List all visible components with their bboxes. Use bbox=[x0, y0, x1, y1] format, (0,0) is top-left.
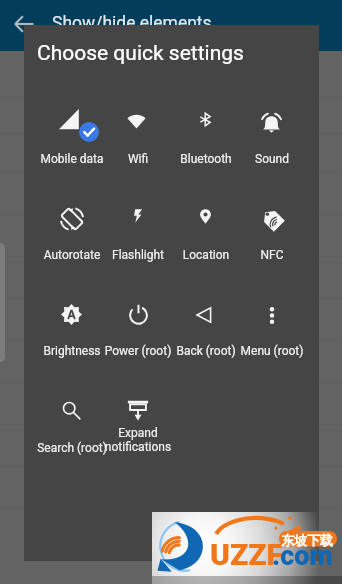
staticText: .com bbox=[272, 540, 333, 572]
staticText: Mobile data bbox=[27, 152, 117, 166]
button[interactable]: Sound bbox=[239, 91, 305, 169]
button[interactable]: Menu (root) bbox=[239, 283, 305, 361]
staticText: Menu (root) bbox=[227, 344, 317, 358]
button[interactable]: NFC bbox=[239, 187, 305, 265]
button[interactable]: Mobile data bbox=[39, 91, 105, 169]
staticText: Show/hide elements bbox=[52, 13, 212, 34]
staticText: Flashlight bbox=[93, 248, 183, 262]
staticText: Search (root) bbox=[27, 441, 117, 455]
staticText: UZZF bbox=[210, 537, 283, 572]
button[interactable]: Power (root) bbox=[105, 283, 171, 361]
button[interactable]: Back (root) bbox=[173, 283, 239, 361]
staticText: 东坡下载 bbox=[281, 532, 333, 548]
button[interactable]: Bluetooth bbox=[173, 91, 239, 169]
button[interactable]: Autorotate bbox=[39, 187, 105, 265]
staticText: Back (root) bbox=[161, 344, 251, 358]
staticText: Sound bbox=[227, 152, 317, 166]
button[interactable]: Brightness bbox=[39, 283, 105, 361]
staticText: Expand notifications bbox=[93, 426, 183, 454]
staticText: Autorotate bbox=[27, 248, 117, 262]
button[interactable]: Flashlight bbox=[105, 187, 171, 265]
staticText: Power (root) bbox=[93, 344, 183, 358]
button[interactable]: Expand notifications bbox=[105, 378, 171, 456]
staticText: Brightness bbox=[27, 344, 117, 358]
button[interactable]: Search (root) bbox=[39, 378, 105, 456]
staticText: Choose quick settings bbox=[37, 41, 244, 66]
staticText: NFC bbox=[227, 248, 317, 262]
staticText: Wifi bbox=[93, 152, 183, 166]
staticText: Bluetooth bbox=[161, 152, 251, 166]
button[interactable]: Location bbox=[173, 187, 239, 265]
button[interactable]: Back bbox=[4, 4, 44, 44]
staticText: Location bbox=[161, 248, 251, 262]
button[interactable]: Wifi bbox=[105, 91, 171, 169]
